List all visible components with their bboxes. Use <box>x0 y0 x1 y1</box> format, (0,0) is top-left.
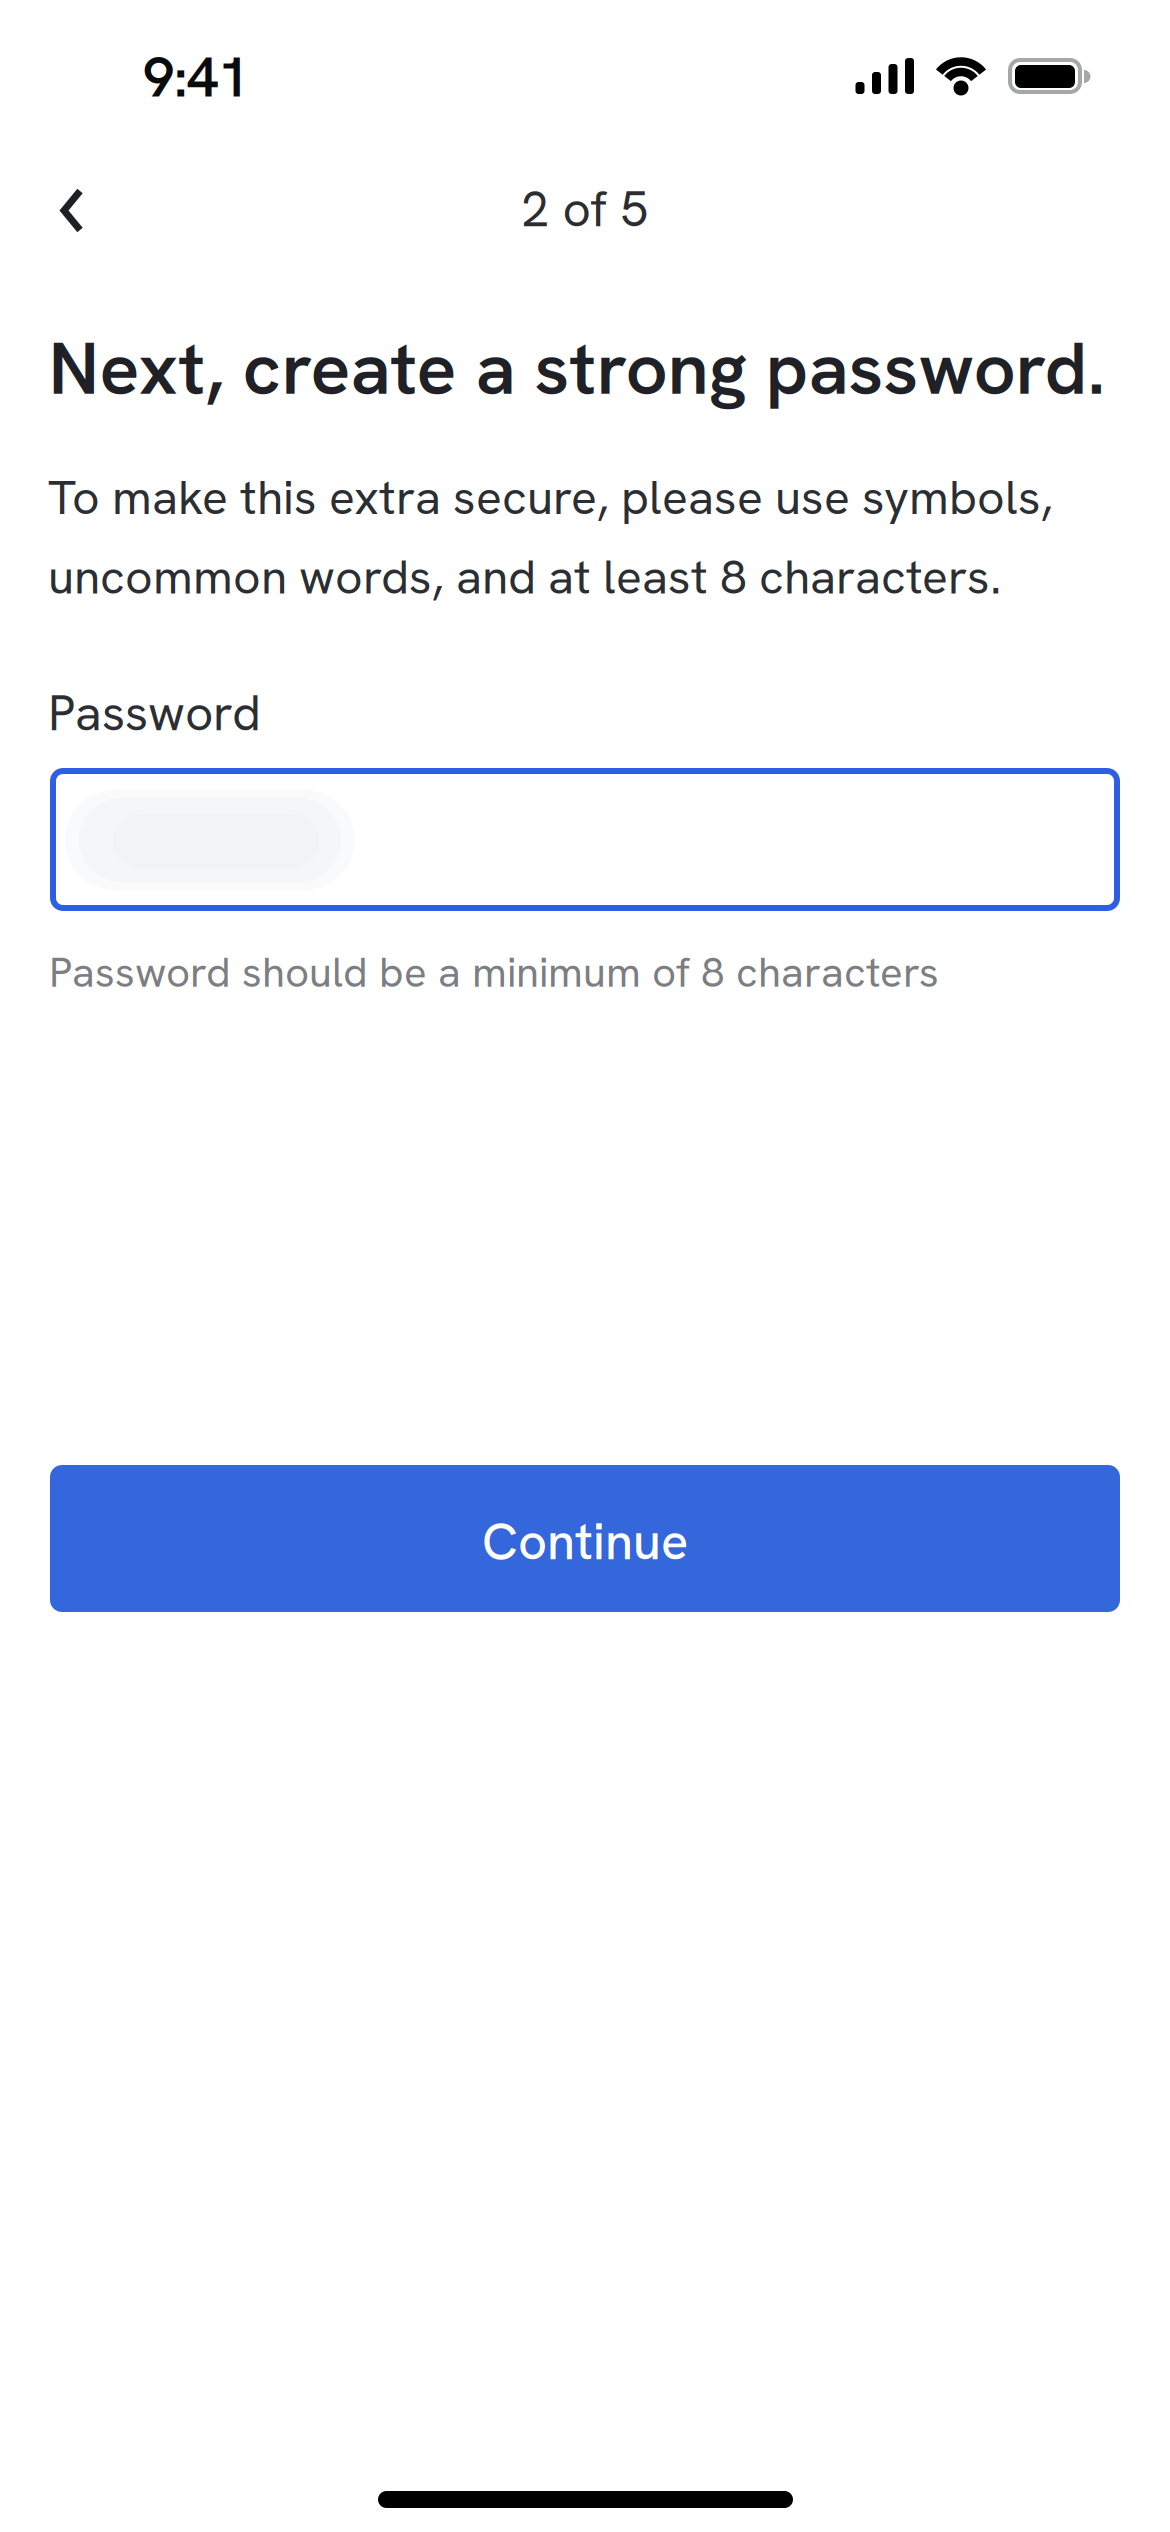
staticText: Continue <box>482 1508 688 1574</box>
staticText: To make this extra secure, please use sy… <box>48 466 1053 608</box>
button[interactable]: Continue <box>50 1465 1120 1612</box>
staticText: 9:41 <box>143 40 249 113</box>
staticText: Password should be a minimum of 8 charac… <box>49 945 939 999</box>
staticText: Password <box>48 681 261 745</box>
button[interactable]: Password <box>50 768 1120 911</box>
staticText: 2 of 5 <box>521 177 648 241</box>
staticText: Next, create a strong password. <box>48 320 1105 416</box>
button[interactable]: Back <box>52 180 96 240</box>
